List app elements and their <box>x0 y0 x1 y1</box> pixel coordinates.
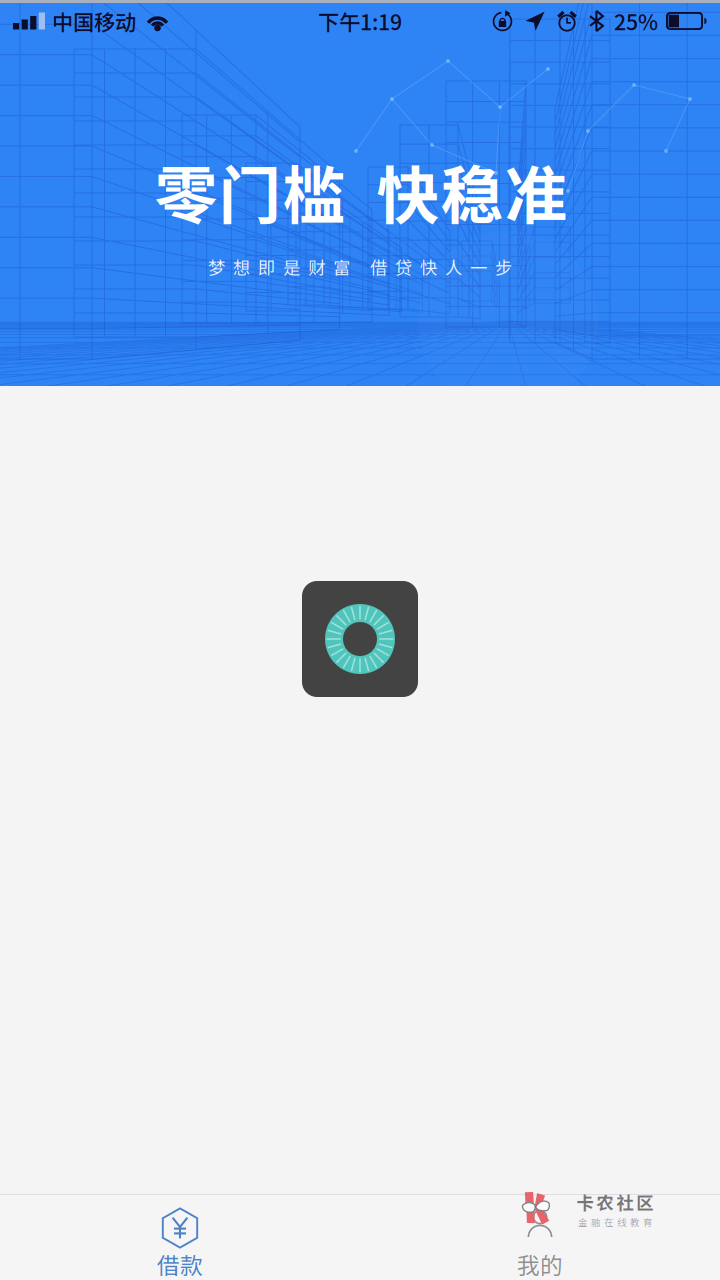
button[interactable]: 借款 <box>0 1194 360 1280</box>
staticText: 卡农社区 <box>576 1189 653 1215</box>
staticText: 下午1:19 <box>318 6 402 36</box>
button[interactable]: 我的 <box>360 1194 720 1280</box>
staticText: 借款 <box>157 1248 203 1280</box>
staticText: 梦想即是财富 借贷快人一步 <box>208 254 512 280</box>
staticText: 中国移动 <box>52 6 136 36</box>
staticText: 零门槛 快稳准 <box>154 146 567 236</box>
staticText: 我的 <box>517 1248 563 1280</box>
staticText: 金融在线教育 <box>578 1215 652 1229</box>
staticText: 25% <box>614 6 658 36</box>
